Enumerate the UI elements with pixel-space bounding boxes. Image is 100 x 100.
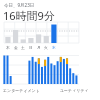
staticText: 今日、9月23日 <box>4 2 35 8</box>
staticText: 木 <box>6 45 10 50</box>
staticText: 月 <box>37 45 41 50</box>
staticText: エンターテイメント <box>3 88 40 93</box>
staticText: 火 <box>44 45 48 50</box>
staticText: 金 <box>14 45 18 50</box>
staticText: ユーティリティ <box>60 88 89 93</box>
staticText: 土 <box>21 45 25 50</box>
staticText: 16時間9分 <box>3 8 55 23</box>
staticText: 水 <box>52 45 56 50</box>
staticText: 日 <box>29 45 33 50</box>
